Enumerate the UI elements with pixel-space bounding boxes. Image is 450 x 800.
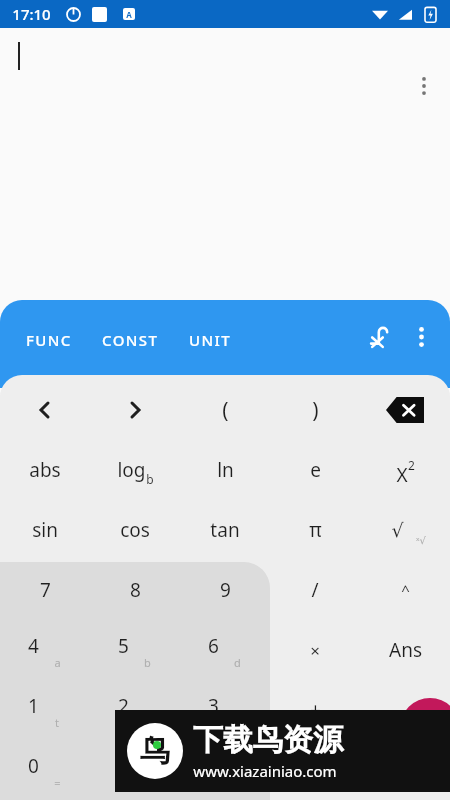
staticText: ^ — [401, 580, 410, 600]
staticText: 7 — [40, 577, 51, 603]
staticText: ) — [312, 396, 319, 425]
button[interactable]: tan — [181, 501, 269, 559]
button[interactable]: Function — [364, 320, 398, 354]
staticText: e — [310, 457, 321, 483]
button[interactable]: More options — [410, 72, 438, 100]
button[interactable]: Left — [1, 381, 89, 439]
staticText: abs — [29, 457, 61, 483]
staticText: www.xiazainiao.com — [193, 761, 337, 781]
button[interactable]: 8 — [91, 561, 179, 619]
staticText: / — [311, 577, 319, 603]
staticText: FUNC — [26, 330, 72, 350]
button[interactable]: 4 — [1, 621, 89, 679]
button[interactable]: abs — [1, 441, 89, 499]
staticText: 3 — [208, 693, 219, 719]
button[interactable]: UNIT — [185, 326, 236, 354]
button[interactable]: e — [271, 441, 359, 499]
staticText: sin — [32, 517, 58, 543]
button[interactable]: Ans — [361, 621, 449, 679]
staticText: d — [234, 655, 241, 670]
staticText: tan — [210, 517, 240, 543]
button[interactable]: 9 — [181, 561, 269, 619]
staticText: 下载鸟资源 — [193, 721, 343, 759]
button[interactable]: 2 — [91, 681, 179, 739]
staticText: 2 — [118, 693, 129, 719]
staticText: 6 — [208, 633, 219, 659]
button[interactable]: / — [271, 561, 359, 619]
staticText: 5 — [118, 633, 129, 659]
button[interactable]: 5 — [91, 621, 179, 679]
staticText: √ — [391, 519, 404, 541]
staticText: 0 — [28, 753, 39, 779]
button[interactable]: sin — [1, 501, 89, 559]
button[interactable]: 0 — [1, 741, 89, 799]
button[interactable]: ( — [181, 381, 269, 439]
staticText: ( — [222, 396, 229, 425]
staticText: log — [117, 457, 146, 483]
button[interactable]: × — [271, 621, 359, 679]
button[interactable]: ) — [271, 381, 359, 439]
button[interactable]: cos — [91, 501, 179, 559]
button[interactable]: 3 — [181, 681, 269, 739]
staticText: Ans — [389, 637, 422, 663]
staticText: cos — [120, 517, 150, 543]
button[interactable]: ln — [181, 441, 269, 499]
staticText: b — [146, 471, 154, 487]
staticText: 17:10 — [12, 4, 51, 24]
button[interactable]: Right — [91, 381, 179, 439]
button[interactable]: 1 — [1, 681, 89, 739]
staticText: X — [396, 462, 408, 488]
staticText: ˣ√ — [416, 533, 426, 547]
button[interactable]: X — [361, 441, 449, 499]
staticText: A — [126, 9, 132, 20]
staticText: = — [54, 775, 61, 790]
staticText: 4 — [28, 633, 39, 659]
staticText: t — [55, 715, 59, 730]
button[interactable]: log — [91, 441, 179, 499]
staticText: UNIT — [189, 330, 232, 350]
button[interactable]: Evaluate — [400, 698, 450, 758]
staticText: 2 — [408, 457, 415, 473]
button[interactable]: √ — [361, 501, 449, 559]
button[interactable]: FUNC — [22, 326, 76, 354]
button[interactable]: Backspace — [361, 381, 449, 439]
staticText: ln — [217, 457, 234, 483]
staticText: π — [309, 517, 322, 543]
button[interactable]: 6 — [181, 621, 269, 679]
button[interactable]: π — [271, 501, 359, 559]
button[interactable]: + — [271, 681, 359, 739]
staticText: × — [310, 639, 320, 662]
staticText: b — [144, 655, 151, 670]
staticText: a — [54, 655, 61, 670]
button[interactable]: 7 — [1, 561, 89, 619]
staticText: 9 — [220, 577, 231, 603]
staticText: CONST — [102, 330, 159, 350]
button[interactable]: More options — [404, 320, 438, 354]
staticText: 鸟 — [140, 732, 170, 770]
button[interactable]: ^ — [361, 561, 449, 619]
staticText: + — [310, 697, 321, 723]
staticText: 8 — [130, 577, 141, 603]
staticText: 1 — [28, 693, 39, 719]
button[interactable]: CONST — [98, 326, 163, 354]
